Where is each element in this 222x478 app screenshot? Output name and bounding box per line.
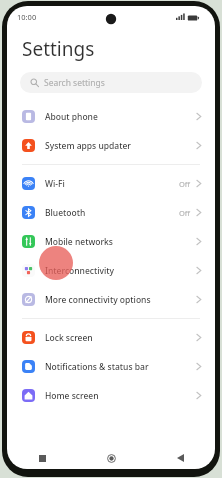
staticText: Bluetooth <box>45 207 86 219</box>
staticText: Search settings <box>44 77 105 89</box>
button[interactable]: About phone <box>7 102 215 131</box>
staticText: 10:00 <box>17 12 37 22</box>
staticText: Interconnectivity <box>45 265 115 277</box>
staticText: Mobile networks <box>45 236 113 248</box>
button[interactable]: Recents <box>7 447 77 469</box>
staticText: Home screen <box>45 390 99 402</box>
button[interactable]: Search settings <box>20 72 202 93</box>
button[interactable]: Bluetooth <box>7 198 215 227</box>
button[interactable]: Interconnectivity <box>7 256 215 285</box>
staticText: Wi-Fi <box>45 178 65 190</box>
staticText: Settings <box>22 36 95 62</box>
button[interactable]: Notifications & status bar <box>7 352 215 381</box>
staticText: Lock screen <box>45 332 93 344</box>
staticText: More connectivity options <box>45 294 151 306</box>
staticText: System apps updater <box>45 140 131 152</box>
button[interactable]: System apps updater <box>7 131 215 160</box>
staticText: About phone <box>45 111 98 123</box>
button[interactable]: Mobile networks <box>7 227 215 256</box>
button[interactable]: Home screen <box>7 381 215 410</box>
staticText: Off <box>179 208 191 218</box>
button[interactable]: More connectivity options <box>7 285 215 314</box>
button[interactable]: Wi-Fi <box>7 169 215 198</box>
button[interactable]: Lock screen <box>7 323 215 352</box>
button[interactable]: Back <box>146 447 215 469</box>
button[interactable]: Home <box>77 447 146 469</box>
staticText: Notifications & status bar <box>45 361 149 373</box>
staticText: Off <box>179 179 191 189</box>
